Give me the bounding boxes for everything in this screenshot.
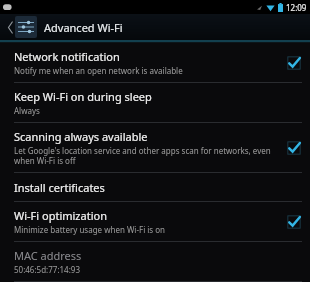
staticText: Minimize battery usage when Wi-Fi is on bbox=[14, 224, 166, 235]
staticText: 12:09 bbox=[286, 2, 307, 13]
button[interactable]: Wi-Fi optimization bbox=[0, 202, 310, 241]
staticText: Scanning always available bbox=[14, 129, 148, 144]
button[interactable]: Navigate up bbox=[0, 14, 44, 40]
staticText: Let Google's location service and other … bbox=[14, 145, 278, 166]
staticText: Wi-Fi optimization bbox=[14, 208, 107, 223]
button[interactable]: Toggle bbox=[286, 55, 302, 71]
button[interactable]: Scanning always available bbox=[0, 123, 310, 172]
button[interactable]: Install certificates bbox=[0, 173, 310, 201]
staticText: 50:46:5d:77:14:93 bbox=[14, 264, 80, 275]
staticText: Always bbox=[14, 105, 40, 116]
button[interactable]: Toggle bbox=[286, 214, 302, 230]
staticText: MAC address bbox=[14, 248, 82, 263]
staticText: Advanced Wi-Fi bbox=[44, 20, 123, 35]
staticText: Notify me when an open network is availa… bbox=[14, 65, 183, 76]
button[interactable]: Network notification bbox=[0, 43, 310, 82]
button[interactable]: Keep Wi-Fi on during sleep bbox=[0, 83, 310, 122]
staticText: Install certificates bbox=[14, 180, 105, 195]
staticText: Network notification bbox=[14, 49, 120, 64]
button[interactable]: MAC address bbox=[0, 242, 310, 281]
staticText: Keep Wi-Fi on during sleep bbox=[14, 89, 152, 104]
button[interactable]: Toggle bbox=[286, 140, 302, 156]
